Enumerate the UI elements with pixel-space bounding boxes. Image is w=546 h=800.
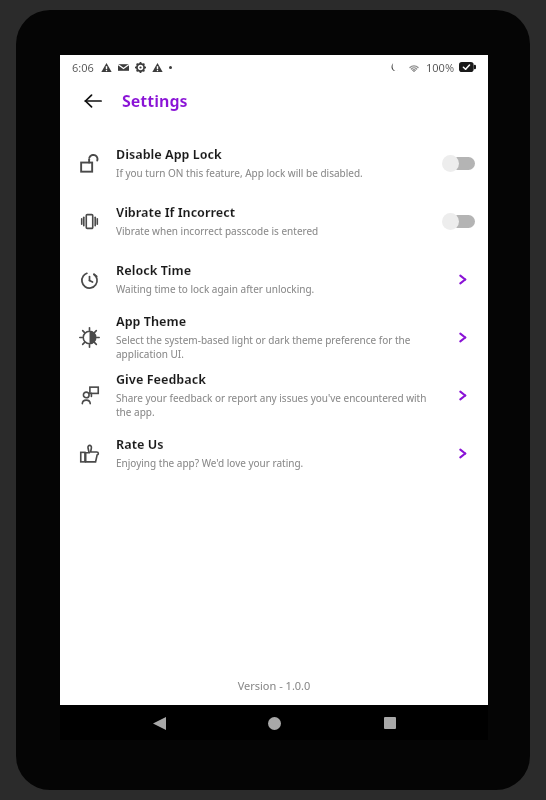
other: Open Rate Us xyxy=(448,439,476,467)
button[interactable]: Vibrate If Incorrect xyxy=(60,192,488,250)
button[interactable]: Recents xyxy=(373,706,407,740)
staticText: Enjoying the app? We'd love your rating. xyxy=(116,456,304,470)
staticText: Settings xyxy=(122,90,188,112)
staticText: 6:06 xyxy=(72,60,94,75)
button[interactable]: Vibrate If Incorrect xyxy=(442,211,476,231)
staticText: App Theme xyxy=(116,313,187,330)
staticText: Share your feedback or report any issues… xyxy=(116,391,440,419)
other: Open Give Feedback xyxy=(448,381,476,409)
staticText: Waiting time to lock again after unlocki… xyxy=(116,282,315,296)
staticText: Rate Us xyxy=(116,436,164,453)
button[interactable]: Back xyxy=(76,84,110,118)
button[interactable]: Disable App Lock xyxy=(60,134,488,192)
button[interactable]: Rate Us xyxy=(60,424,488,482)
staticText: Select the system-based light or dark th… xyxy=(116,333,440,361)
button[interactable]: Relock Time xyxy=(60,250,488,308)
staticText: Give Feedback xyxy=(116,371,206,388)
button[interactable]: Back xyxy=(142,706,176,740)
staticText: 100% xyxy=(426,60,455,75)
staticText: Vibrate when incorrect passcode is enter… xyxy=(116,224,319,238)
staticText: Relock Time xyxy=(116,262,192,279)
staticText: Disable App Lock xyxy=(116,146,222,163)
staticText: If you turn ON this feature, App lock wi… xyxy=(116,166,363,180)
button[interactable]: Home xyxy=(257,706,291,740)
other: Open App Theme xyxy=(448,323,476,351)
button[interactable]: Disable App Lock xyxy=(442,153,476,173)
staticText: Vibrate If Incorrect xyxy=(116,204,236,221)
other: Open Relock Time xyxy=(448,265,476,293)
button[interactable]: App Theme xyxy=(60,308,488,366)
staticText: Version - 1.0.0 xyxy=(60,678,488,693)
button[interactable]: Give Feedback xyxy=(60,366,488,424)
